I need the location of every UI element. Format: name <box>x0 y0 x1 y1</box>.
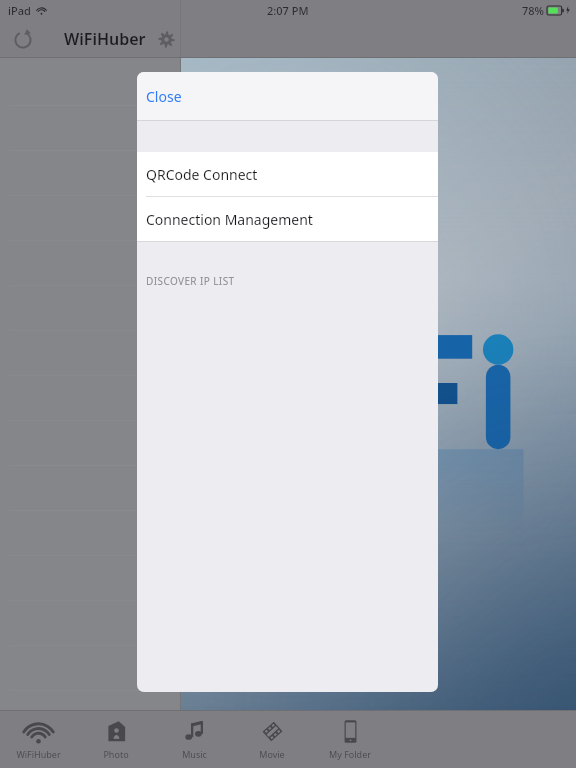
button[interactable] <box>0 330 180 375</box>
button[interactable] <box>0 150 180 195</box>
button[interactable]: Settings <box>150 23 182 55</box>
staticText: My Folder <box>329 748 371 760</box>
button[interactable] <box>0 645 180 690</box>
button[interactable] <box>0 240 180 285</box>
button[interactable] <box>0 555 180 600</box>
staticText: DISCOVER IP LIST <box>146 274 235 288</box>
staticText: Movie <box>259 748 285 760</box>
staticText: iPad <box>8 3 31 18</box>
staticText: 78% <box>522 3 544 18</box>
button[interactable]: WiFiHuber <box>0 711 77 768</box>
button[interactable]: Refresh <box>6 22 40 56</box>
staticText: Connection Management <box>146 210 313 229</box>
button[interactable] <box>0 420 180 465</box>
staticText: 2:07 PM <box>267 3 309 18</box>
button[interactable]: Close <box>137 72 438 120</box>
staticText: QRCode Connect <box>146 165 258 184</box>
button[interactable]: WiFiHuber <box>62 28 148 50</box>
button[interactable]: Music <box>155 711 233 768</box>
button[interactable] <box>0 105 180 150</box>
button[interactable]: Movie <box>233 711 311 768</box>
staticText: Photo <box>103 748 129 760</box>
button[interactable] <box>0 465 180 510</box>
button[interactable] <box>0 690 180 710</box>
button[interactable]: QRCode Connect <box>137 152 438 196</box>
staticText: Close <box>146 87 182 106</box>
button[interactable]: My Folder <box>311 711 389 768</box>
button[interactable] <box>0 510 180 555</box>
button[interactable]: Connection Management <box>137 197 438 241</box>
button[interactable] <box>0 375 180 420</box>
button[interactable] <box>0 195 180 240</box>
button[interactable]: Photo <box>77 711 155 768</box>
button[interactable] <box>0 600 180 645</box>
staticText: WiFiHuber <box>64 28 146 50</box>
staticText: Music <box>182 748 207 760</box>
staticText: WiFiHuber <box>16 748 61 760</box>
button[interactable] <box>0 285 180 330</box>
